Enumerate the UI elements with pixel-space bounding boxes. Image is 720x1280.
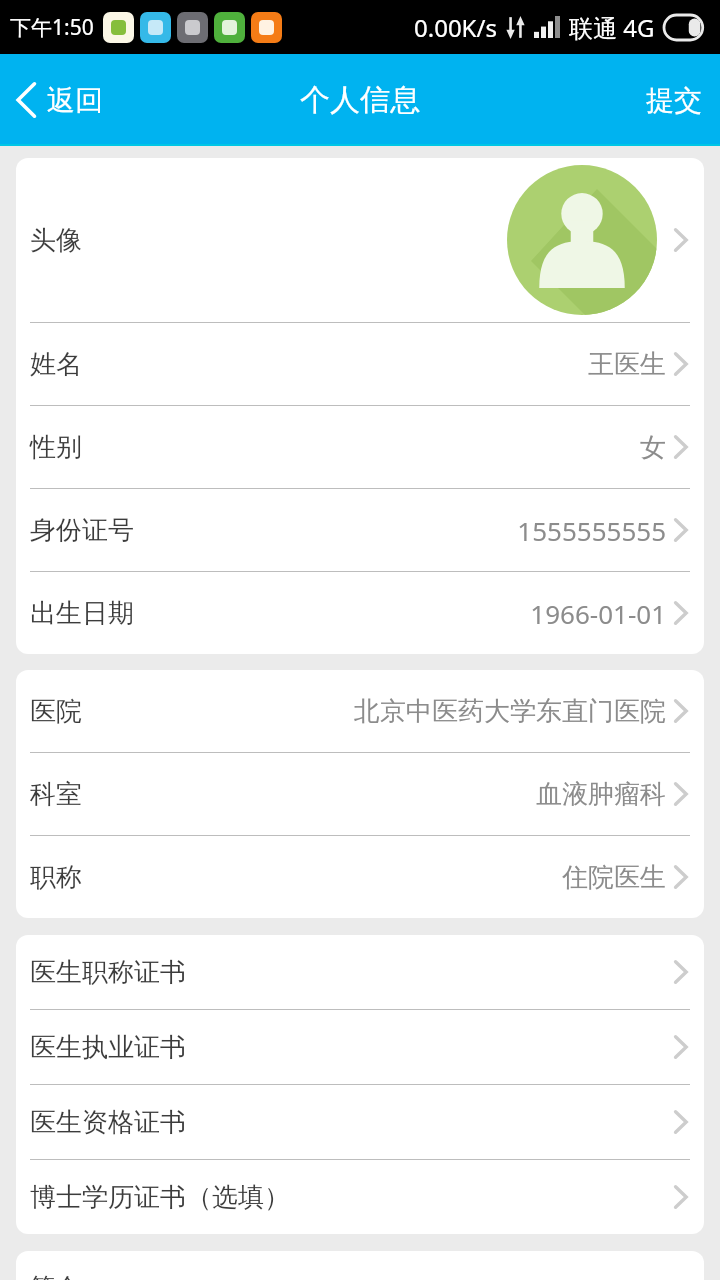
other: 查看 [671, 1031, 690, 1063]
button[interactable]: 科室 [16, 753, 704, 835]
other: 查看 [671, 695, 690, 727]
staticText: 女 [640, 431, 666, 464]
other: 头像 [507, 165, 657, 315]
staticText: 医生职称证书 [30, 956, 186, 989]
other: 查看 [671, 956, 690, 988]
button[interactable]: 医生职称证书 [16, 935, 704, 1009]
other: 查看 [671, 861, 690, 893]
button[interactable]: 性别 [16, 406, 704, 488]
staticText: 住院医生 [562, 861, 666, 894]
staticText: 1555555555 [517, 513, 666, 548]
staticText: 提交 [646, 83, 702, 118]
button[interactable]: 返回 [0, 54, 121, 146]
button[interactable]: 医生执业证书 [16, 1010, 704, 1084]
button[interactable]: 姓名 [16, 323, 704, 405]
staticText: 医生资格证书 [30, 1106, 186, 1139]
other: 查看 [671, 1106, 690, 1138]
button[interactable]: 职称 [16, 836, 704, 918]
staticText: 性别 [30, 431, 82, 464]
staticText: 北京中医药大学东直门医院 [354, 695, 666, 728]
staticText: 下午1:50 [10, 13, 94, 42]
button[interactable]: 身份证号 [16, 489, 704, 571]
staticText: 联通 4G [569, 11, 655, 44]
staticText: 出生日期 [30, 597, 134, 630]
other: 查看 [671, 348, 690, 380]
button[interactable]: 出生日期 [16, 572, 704, 654]
button[interactable]: 医院 [16, 670, 704, 752]
staticText: 个人信息 [300, 81, 420, 119]
staticText: 返回 [47, 83, 103, 118]
other: 查看 [671, 778, 690, 810]
staticText: 0.00K/s [414, 11, 497, 44]
other: 查看 [671, 597, 690, 629]
other: 查看 [671, 431, 690, 463]
staticText: 博士学历证书（选填） [30, 1181, 290, 1214]
other: 查看 [671, 224, 690, 256]
button[interactable]: 博士学历证书（选填） [16, 1160, 704, 1234]
button[interactable]: 提交 [628, 54, 720, 146]
staticText: 医生执业证书 [30, 1031, 186, 1064]
staticText: 血液肿瘤科 [536, 778, 666, 811]
other: 查看 [671, 1181, 690, 1213]
staticText: 科室 [30, 778, 82, 811]
staticText: 王医生 [588, 348, 666, 381]
other: 查看 [671, 514, 690, 546]
staticText: 身份证号 [30, 514, 134, 547]
staticText: 1966-01-01 [530, 596, 666, 631]
button[interactable]: 医生资格证书 [16, 1085, 704, 1159]
staticText: 简介: [30, 1269, 87, 1280]
staticText: 头像 [30, 224, 82, 257]
staticText: 职称 [30, 861, 82, 894]
button[interactable]: 头像 [16, 158, 704, 322]
staticText: 医院 [30, 695, 82, 728]
staticText: 姓名 [30, 348, 82, 381]
